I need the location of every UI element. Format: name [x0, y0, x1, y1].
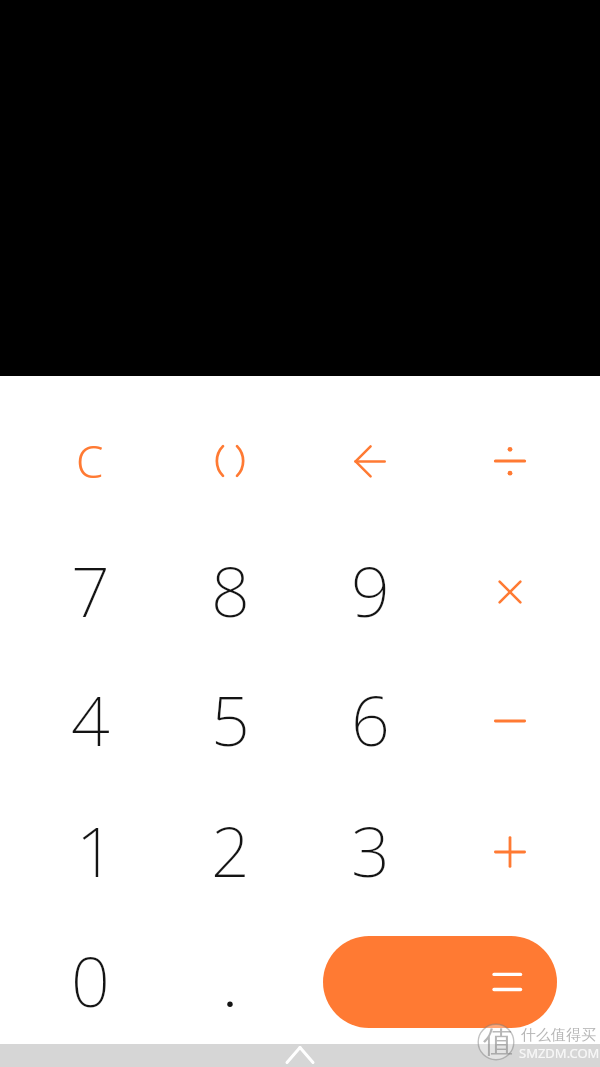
button[interactable]: Add	[440, 788, 580, 916]
button[interactable]: 0	[20, 914, 160, 1042]
staticText: 1	[76, 804, 115, 897]
staticText: 0	[71, 934, 110, 1027]
button[interactable]: Clear	[20, 397, 160, 525]
staticText: 7	[71, 544, 110, 637]
button[interactable]: 9	[300, 528, 440, 656]
staticText: 2	[211, 804, 250, 897]
staticText: 值	[483, 1023, 513, 1061]
button[interactable]: 6	[300, 657, 440, 785]
button[interactable]: Multiply	[440, 528, 580, 656]
button[interactable]: Divide	[440, 397, 580, 525]
staticText: C	[76, 431, 104, 491]
staticText: 6	[351, 673, 390, 766]
staticText: 9	[351, 544, 390, 637]
button[interactable]: Expand keyboard	[0, 1044, 600, 1067]
staticText: 5	[211, 673, 250, 766]
button[interactable]: 7	[20, 528, 160, 656]
button[interactable]: Equals	[323, 936, 557, 1028]
staticText: 4	[71, 673, 110, 766]
staticText: 3	[351, 804, 390, 897]
staticText: SMZDM.COM	[519, 1044, 600, 1062]
button[interactable]: 2	[160, 788, 300, 916]
button[interactable]: Subtract	[440, 657, 580, 785]
button[interactable]: Decimal point	[160, 914, 300, 1042]
button[interactable]: 4	[20, 657, 160, 785]
staticText: 8	[211, 544, 250, 637]
button[interactable]: Backspace	[300, 397, 440, 525]
button[interactable]: 8	[160, 528, 300, 656]
staticText: 什么值得买	[521, 1026, 596, 1045]
button[interactable]: 3	[300, 788, 440, 916]
button[interactable]: 5	[160, 657, 300, 785]
button[interactable]: Parentheses	[160, 397, 300, 525]
button[interactable]: 1	[20, 788, 160, 916]
